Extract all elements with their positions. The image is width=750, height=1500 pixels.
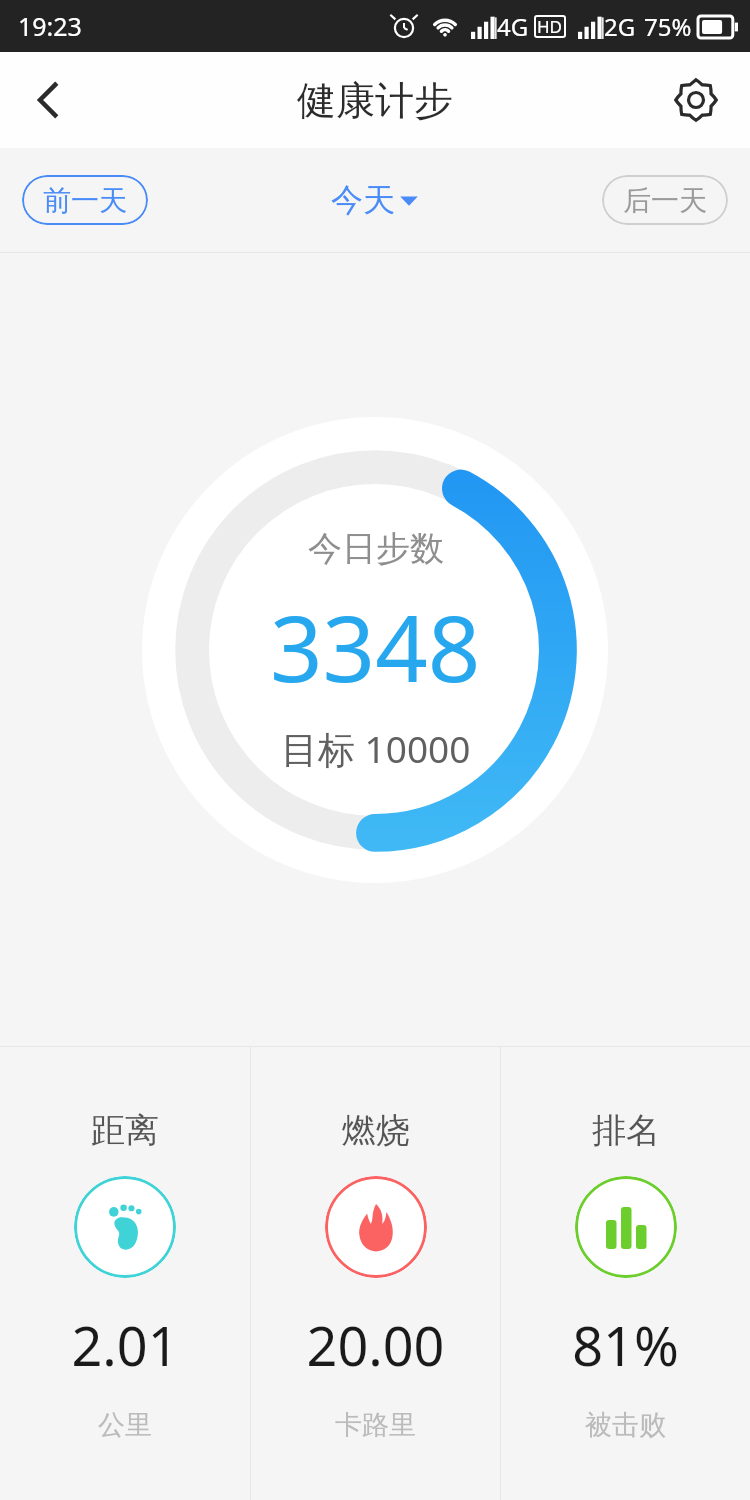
button[interactable]: 今天: [331, 180, 420, 220]
button[interactable]: 距离: [0, 1047, 250, 1500]
staticText: 距离: [91, 1109, 159, 1152]
staticText: 19:23: [18, 9, 82, 43]
button[interactable]: 燃烧: [251, 1047, 500, 1500]
staticText: 公里: [98, 1408, 152, 1442]
staticText: 4G: [497, 10, 529, 43]
staticText: 81%: [572, 1308, 679, 1382]
button[interactable]: 今日步数: [142, 417, 608, 883]
staticText: 3348: [270, 584, 481, 709]
button[interactable]: 前一天: [22, 175, 148, 225]
staticText: 目标 10000: [281, 723, 471, 774]
staticText: 燃烧: [342, 1109, 410, 1152]
staticText: 75%: [644, 10, 692, 43]
staticText: 被击败: [585, 1408, 666, 1442]
staticText: HD: [537, 15, 563, 38]
staticText: 今日步数: [308, 527, 444, 570]
staticText: 2.01: [71, 1308, 179, 1382]
button[interactable]: Settings: [664, 68, 728, 132]
button[interactable]: Back: [12, 64, 84, 136]
staticText: 健康计步: [297, 76, 453, 125]
staticText: 今天: [331, 180, 395, 220]
staticText: 前一天: [43, 183, 127, 218]
staticText: 卡路里: [335, 1408, 416, 1442]
button[interactable]: 后一天: [602, 175, 728, 225]
button[interactable]: 排名: [501, 1047, 750, 1500]
staticText: 20.00: [306, 1308, 445, 1382]
staticText: 排名: [592, 1109, 660, 1152]
staticText: 后一天: [623, 183, 707, 218]
staticText: 2G: [604, 10, 636, 43]
